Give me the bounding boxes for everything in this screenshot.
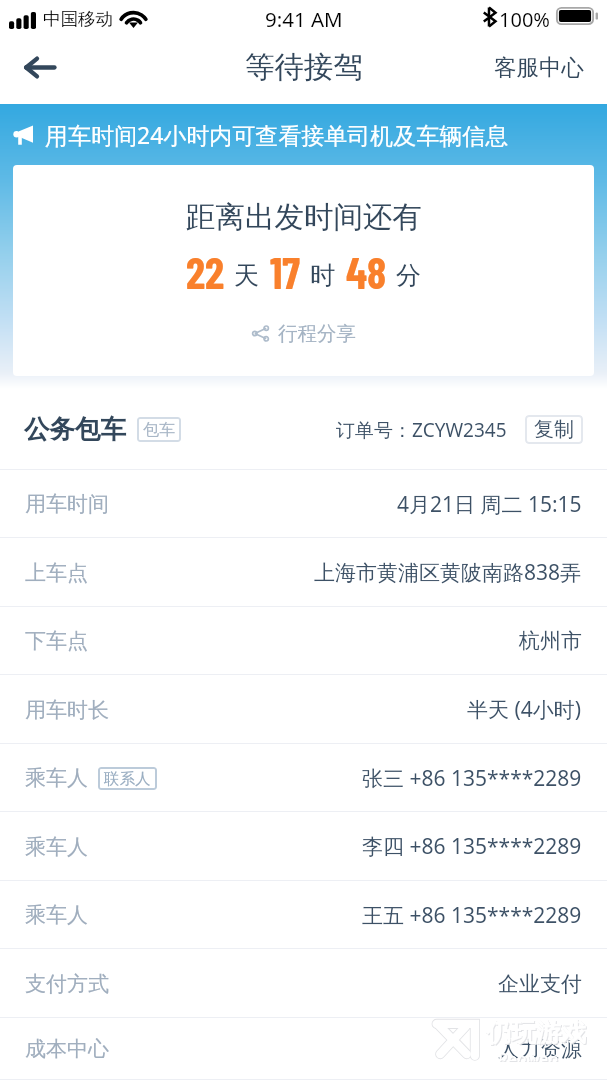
button[interactable]: 客服中心 [472,41,607,93]
staticText: 22 [186,245,225,297]
staticText: 下车点 [25,628,88,654]
staticText: Renwan [499,1049,560,1062]
staticText: 仍玩游戏 [487,1018,587,1049]
staticText: 张三 +86 135****2289 [362,764,582,793]
staticText: 复制 [534,417,574,442]
button[interactable]: 下车点 [0,607,607,675]
staticText: 杭州市 [519,628,582,654]
staticText: 距离出发时间还有 [186,199,422,236]
staticText: 用车时间 [25,491,109,517]
staticText: 行程分享 [278,321,356,346]
button[interactable]: 用车时间 [0,470,607,538]
staticText: 订单号：ZCYW2345 [336,417,507,443]
staticText: 成本中心 [25,1036,109,1062]
button[interactable]: 用车时长 [0,675,607,744]
button[interactable]: 上车点 [0,538,607,607]
staticText: 分 [396,260,421,291]
staticText: 乘车人 [25,902,88,928]
button[interactable]: 行程分享 [241,317,366,350]
staticText: 企业支付 [498,971,582,997]
button[interactable]: 乘车人 [0,744,607,812]
staticText: 17 [270,245,301,297]
staticText: 天 [234,260,259,291]
staticText: 客服中心 [494,53,584,81]
staticText: 乘车人 [25,834,88,860]
staticText: 包车 [143,420,175,440]
button[interactable]: 乘车人 [0,812,607,881]
staticText: 李四 +86 135****2289 [362,832,582,861]
staticText: 用车时长 [25,697,109,723]
staticText: 公务包车 [24,413,126,445]
staticText: 上车点 [25,560,88,586]
staticText: 4月21日 周二 15:15 [397,490,582,519]
staticText: 9:41 AM [265,5,343,33]
staticText: 联系人 [104,769,151,789]
staticText: 人力资源 [498,1036,582,1062]
staticText: 半天 (4小时) [467,695,582,724]
staticText: 王五 +86 135****2289 [362,901,582,930]
staticText: 时 [310,260,335,291]
button[interactable]: 成本中心 [0,1018,607,1080]
staticText: 48 [346,245,387,297]
button[interactable]: 支付方式 [0,949,607,1018]
staticText: 中国移动 [43,8,113,30]
staticText: 上海市黄浦区黄陂南路838弄 [314,558,582,587]
staticText: 等待接驾 [245,49,363,86]
staticText: Renwan [498,1048,559,1061]
staticText: 100% [499,6,550,33]
staticText: 支付方式 [25,971,109,997]
staticText: 用车时间24小时内可查看接单司机及车辆信息 [45,119,509,150]
button[interactable]: 返回 [10,38,68,96]
button[interactable]: 乘车人 [0,881,607,949]
button[interactable]: 复制 [525,415,583,444]
staticText: 乘车人 [25,765,88,791]
staticText: 仍玩游戏 [486,1017,586,1048]
